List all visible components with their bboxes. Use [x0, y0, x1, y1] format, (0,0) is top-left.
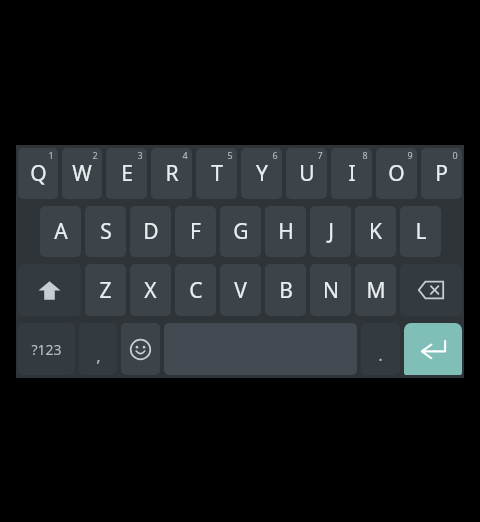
staticText: J [328, 217, 334, 246]
button[interactable]: B [265, 264, 306, 316]
staticText: F [190, 217, 201, 246]
staticText: P [435, 159, 448, 188]
button[interactable]: Emoji [121, 323, 160, 375]
button[interactable]: Enter [404, 323, 462, 375]
button[interactable]: U [286, 148, 327, 199]
staticText: . [378, 343, 383, 366]
button[interactable]: O [376, 148, 417, 199]
staticText: Q [30, 159, 47, 188]
staticText: 2 [92, 149, 98, 161]
button[interactable]: T [196, 148, 237, 199]
staticText: 1 [48, 149, 54, 161]
button[interactable]: D [130, 206, 171, 257]
button[interactable]: F [175, 206, 216, 257]
staticText: U [299, 159, 315, 188]
button[interactable]: Backspace [400, 264, 462, 316]
button[interactable]: Shift [18, 264, 81, 316]
staticText: X [144, 276, 157, 305]
button[interactable]: W [62, 148, 102, 199]
staticText: D [143, 217, 159, 246]
staticText: A [54, 217, 68, 246]
button[interactable]: V [220, 264, 261, 316]
staticText: 4 [182, 149, 188, 161]
button[interactable]: K [355, 206, 396, 257]
staticText: C [189, 276, 203, 305]
staticText: N [323, 276, 339, 305]
staticText: I [348, 159, 356, 188]
staticText: O [388, 159, 405, 188]
button[interactable]: J [310, 206, 351, 257]
button[interactable]: M [355, 264, 396, 316]
staticText: 5 [227, 149, 233, 161]
staticText: M [366, 276, 386, 305]
staticText: L [415, 217, 427, 246]
button[interactable]: R [151, 148, 192, 199]
button[interactable]: L [400, 206, 441, 257]
button[interactable]: G [220, 206, 261, 257]
staticText: K [369, 217, 382, 246]
staticText: , [96, 344, 101, 367]
button[interactable]: N [310, 264, 351, 316]
button[interactable]: , [79, 323, 117, 375]
staticText: 6 [272, 149, 278, 161]
staticText: T [211, 159, 223, 188]
button[interactable]: X [130, 264, 171, 316]
button[interactable]: ?123 [18, 323, 75, 375]
staticText: B [279, 276, 293, 305]
staticText: Z [99, 276, 112, 305]
staticText: Y [256, 159, 268, 188]
button[interactable]: Q [18, 148, 58, 199]
button[interactable]: . [361, 323, 400, 375]
button[interactable]: H [265, 206, 306, 257]
staticText: H [278, 217, 294, 246]
staticText: 3 [137, 149, 143, 161]
staticText: R [165, 159, 179, 188]
button[interactable]: Y [241, 148, 282, 199]
button[interactable]: I [331, 148, 372, 199]
button[interactable]: P [421, 148, 462, 199]
staticText: 9 [407, 149, 413, 161]
button[interactable]: S [85, 206, 126, 257]
staticText: 7 [317, 149, 323, 161]
staticText: 8 [362, 149, 368, 161]
button[interactable]: Z [85, 264, 126, 316]
staticText: E [121, 159, 133, 188]
staticText: W [72, 159, 92, 188]
staticText: 0 [452, 149, 458, 161]
button[interactable]: A [40, 206, 81, 257]
button[interactable]: E [106, 148, 147, 199]
staticText: ?123 [31, 340, 62, 359]
button[interactable]: C [175, 264, 216, 316]
staticText: G [233, 217, 249, 246]
staticText: S [100, 217, 112, 246]
staticText: V [234, 276, 247, 305]
